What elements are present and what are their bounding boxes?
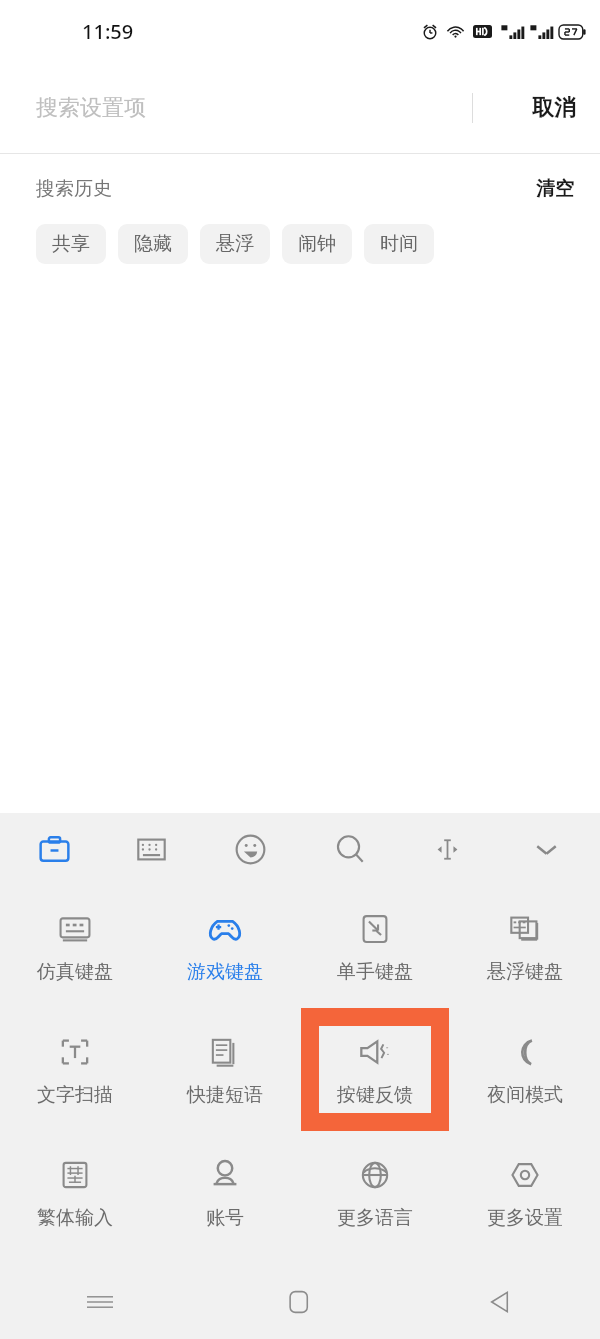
button[interactable]: Recent apps (0, 1265, 200, 1339)
staticText: 清空 (536, 177, 574, 201)
staticText: 更多语言 (337, 1206, 413, 1230)
button[interactable]: Toolbox (27, 822, 81, 876)
staticText: 快捷短语 (187, 1083, 263, 1107)
staticText: 游戏键盘 (187, 960, 263, 984)
staticText: 夜间模式 (487, 1083, 563, 1107)
button[interactable]: 账号 (150, 1131, 300, 1254)
staticText: 隐藏 (134, 232, 172, 256)
button[interactable]: 更多设置 (450, 1131, 600, 1254)
button[interactable]: 闹钟 (282, 224, 352, 264)
button[interactable]: 按键反馈 (300, 1008, 450, 1131)
staticText: 取消 (532, 94, 576, 122)
staticText: 闹钟 (298, 232, 336, 256)
staticText: 更多设置 (487, 1206, 563, 1230)
staticText: 时间 (380, 232, 418, 256)
button[interactable]: Move cursor (420, 822, 474, 876)
button[interactable]: 取消 (508, 78, 600, 138)
staticText: 共享 (52, 232, 90, 256)
staticText: 文字扫描 (37, 1083, 113, 1107)
button[interactable]: 共享 (36, 224, 106, 264)
button[interactable]: 文字扫描 (0, 1008, 150, 1131)
staticText: 悬浮 (216, 232, 254, 256)
staticText: 仿真键盘 (37, 960, 113, 984)
button[interactable]: 时间 (364, 224, 434, 264)
button[interactable]: Emoji (223, 822, 277, 876)
button[interactable]: Back (400, 1265, 600, 1339)
button[interactable]: 清空 (510, 163, 600, 215)
button[interactable]: 快捷短语 (150, 1008, 300, 1131)
staticText: 搜索历史 (36, 177, 112, 201)
staticText: 11:59 (82, 18, 134, 45)
staticText: 搜索设置项 (36, 94, 146, 122)
button[interactable]: Home (200, 1265, 400, 1339)
button[interactable]: 更多语言 (300, 1131, 450, 1254)
staticText: 繁体输入 (37, 1206, 113, 1230)
button[interactable]: 夜间模式 (450, 1008, 600, 1131)
button[interactable]: Collapse (519, 822, 573, 876)
button[interactable]: 仿真键盘 (0, 885, 150, 1008)
button[interactable]: Search (323, 822, 377, 876)
staticText: 按键反馈 (337, 1083, 413, 1107)
button[interactable]: 游戏键盘 (150, 885, 300, 1008)
button[interactable]: 悬浮键盘 (450, 885, 600, 1008)
button[interactable]: 悬浮 (200, 224, 270, 264)
staticText: 账号 (206, 1206, 244, 1230)
button[interactable]: 繁体输入 (0, 1131, 150, 1254)
button[interactable]: 单手键盘 (300, 885, 450, 1008)
button[interactable]: Keyboard (124, 822, 178, 876)
staticText: 悬浮键盘 (487, 960, 563, 984)
button[interactable]: 隐藏 (118, 224, 188, 264)
staticText: 单手键盘 (337, 960, 413, 984)
